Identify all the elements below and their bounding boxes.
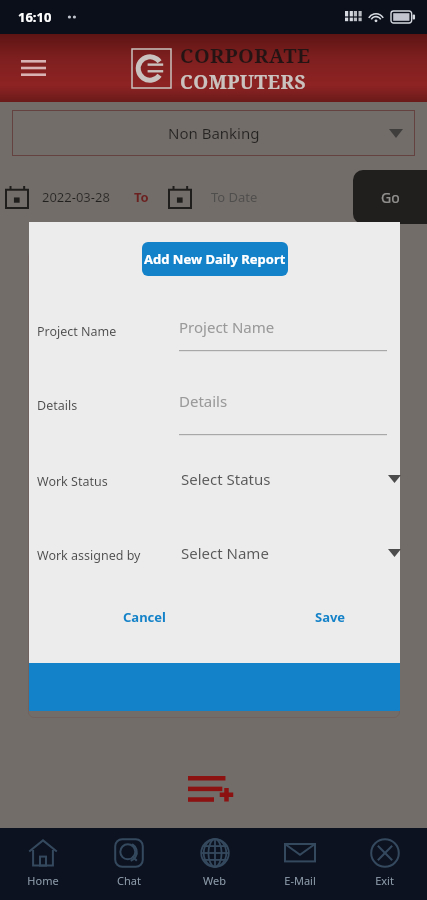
button[interactable]: Web [172,828,257,900]
staticText: Save [315,608,346,626]
staticText: Non Banking [168,123,260,143]
staticText: Add New Daily Report [144,250,286,268]
staticText: Project Name [179,317,275,337]
staticText: E-Mail [284,873,316,888]
button[interactable]: Details [179,391,387,435]
staticText: Select Status [181,469,271,489]
button[interactable]: Save [315,608,346,626]
staticText: Project Name [37,323,117,340]
staticText: CORPORATE [180,42,311,69]
button[interactable]: Home [0,828,86,900]
button[interactable]: Project Name [179,317,387,351]
staticText: Go [381,188,400,207]
staticText: Details [37,397,78,414]
staticText: Web [203,873,226,888]
button[interactable]: Select Status [181,463,401,495]
button[interactable]: Select Name [181,537,401,569]
staticText: Details [179,391,228,411]
button[interactable]: Cancel [123,608,166,626]
staticText: 16:10 [18,8,52,26]
staticText: Cancel [123,608,166,626]
button[interactable]: E-Mail [257,828,342,900]
staticText: 2022-03-28 [42,188,110,206]
staticText: To [134,188,149,206]
button[interactable]: Open navigation menu [14,49,52,87]
button[interactable]: Chat [86,828,172,900]
staticText: Exit [375,873,394,888]
button[interactable]: Exit [342,828,427,900]
button[interactable]: Add new daily report [188,776,240,814]
staticText: Work assigned by [37,547,141,564]
staticText: COMPUTERS [180,69,306,95]
staticText: Chat [117,873,141,888]
button[interactable]: Add New Daily Report [142,242,288,276]
staticText: To Date [211,188,258,206]
staticText: Select Name [181,543,269,563]
staticText: Home [27,873,59,888]
button[interactable]: Go [353,170,427,224]
staticText: Work Status [37,473,108,490]
button[interactable]: Non Banking [12,110,415,156]
